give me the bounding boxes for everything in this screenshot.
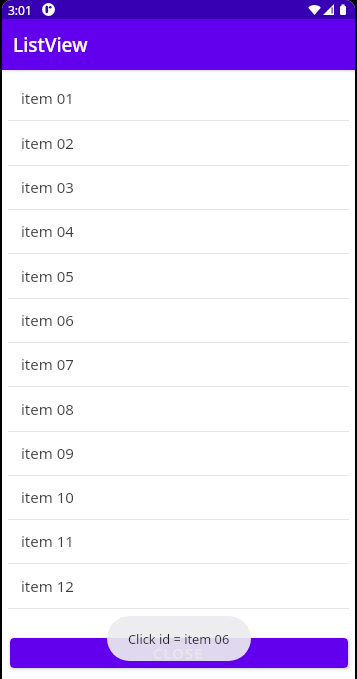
staticText: item 08 [21,399,74,419]
staticText: item 11 [21,531,74,551]
staticText: item 03 [21,177,74,197]
staticText: item 12 [21,576,74,596]
button[interactable]: item 10 [2,476,355,520]
staticText: ListView [13,32,88,58]
staticText: item 09 [21,443,74,463]
button[interactable]: item 05 [2,255,355,299]
staticText: Click id = item 06 [128,630,230,647]
button[interactable]: item 06 [2,299,355,343]
staticText: item 04 [21,221,74,241]
button[interactable]: item 09 [2,432,355,476]
staticText: item 06 [21,310,74,330]
button[interactable]: item 04 [2,210,355,254]
button[interactable]: CLOSE [10,638,348,668]
staticText: CLOSE [153,644,205,663]
button[interactable]: item 03 [2,166,355,210]
button[interactable]: item 08 [2,388,355,432]
staticText: item 02 [21,133,74,153]
button[interactable]: item 12 [2,565,355,609]
staticText: 3:01 [8,2,32,18]
staticText: item 01 [21,88,74,108]
staticText: item 07 [21,354,74,374]
button[interactable]: item 07 [2,343,355,387]
button[interactable]: item 02 [2,122,355,166]
button[interactable]: item 11 [2,520,355,564]
staticText: item 10 [21,487,74,507]
button[interactable]: item 01 [2,77,355,121]
staticText: item 05 [21,266,74,286]
